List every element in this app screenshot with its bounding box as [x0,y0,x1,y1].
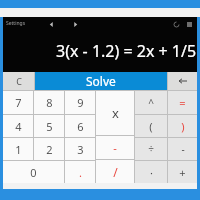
button[interactable]: 2 [34,138,64,160]
staticText: - [113,140,117,155]
button[interactable]: Previous [46,19,56,29]
staticText: 0 [30,165,37,180]
staticText: C [16,75,22,87]
button[interactable]: / [96,160,134,183]
button[interactable]: Menu [184,19,194,29]
staticText: + [179,165,186,180]
button[interactable]: 8 [34,91,64,114]
staticText: - [181,142,185,156]
staticText: 5 [46,119,53,134]
staticText: ^ [148,96,154,110]
button[interactable]: . [65,161,95,183]
button[interactable]: x [96,91,134,135]
button[interactable]: Undo [171,19,181,29]
button[interactable]: 5 [34,115,64,137]
button[interactable]: 0 [3,161,64,183]
button[interactable]: = [168,91,197,114]
button[interactable]: 1 [3,138,33,160]
button[interactable]: ) [168,115,197,137]
staticText: 3 [77,142,84,157]
button[interactable]: - [96,136,134,159]
staticText: 9 [77,95,84,110]
staticText: 6 [77,119,84,134]
button[interactable]: 7 [3,91,33,114]
button[interactable]: 6 [65,115,95,137]
button[interactable]: - [168,138,197,160]
staticText: 7 [15,95,22,110]
button[interactable]: · [135,161,167,183]
staticText: ) [181,119,185,134]
staticText: 4 [15,119,22,134]
staticText: . [79,165,82,180]
button[interactable]: 9 [65,91,95,114]
staticText: · [150,165,153,180]
staticText: = [179,95,186,110]
button[interactable]: 3 [65,138,95,160]
button[interactable]: ( [135,115,167,137]
button[interactable]: ÷ [135,138,167,160]
button[interactable]: Next [70,19,80,29]
button[interactable]: C [3,72,34,90]
button[interactable]: + [168,161,197,183]
staticText: 8 [46,95,53,110]
staticText: Settings [6,20,26,27]
staticText: ÷ [148,142,154,156]
staticText: 1 [15,142,22,157]
staticText: Solve [86,73,116,89]
button[interactable]: ^ [135,91,167,114]
staticText: ( [149,119,153,134]
staticText: 3(x - 1.2) = 2x + 1/5 [56,40,197,62]
button[interactable]: Solve [35,72,167,90]
button[interactable]: Backspace [168,72,197,90]
staticText: / [113,164,118,180]
button[interactable]: 4 [3,115,33,137]
staticText: 2 [46,142,53,157]
staticText: x [112,104,119,122]
